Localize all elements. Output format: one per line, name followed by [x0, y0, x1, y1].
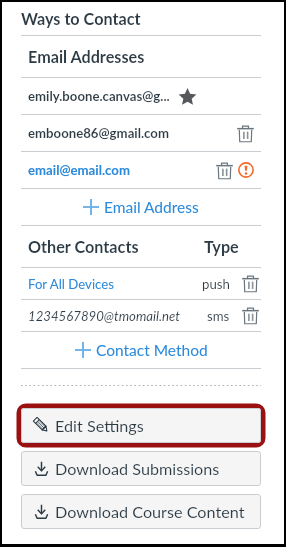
button[interactable]: For All Devices — [21, 268, 261, 299]
button[interactable]: Email Address — [21, 189, 261, 225]
button[interactable]: 1234567890@tmomail.net — [21, 300, 261, 331]
staticText: emily.boone.canvas@g... — [28, 88, 170, 104]
button[interactable]: emboone86@gmail.com — [21, 115, 261, 151]
button[interactable]: emily.boone.canvas@g... — [21, 78, 261, 114]
staticText: push — [202, 276, 230, 292]
button[interactable]: Download Course Content — [21, 494, 261, 529]
staticText: email@email.com — [28, 162, 130, 178]
staticText: Ways to Contact — [21, 9, 141, 28]
button[interactable]: Edit Settings — [21, 408, 261, 443]
staticText: emboone86@gmail.com — [28, 125, 169, 141]
staticText: sms — [207, 308, 230, 324]
staticText: Edit Settings — [55, 416, 144, 435]
button[interactable]: Delete — [216, 162, 233, 179]
staticText: Contact Method — [96, 341, 208, 360]
button[interactable]: Download Submissions — [21, 451, 261, 486]
staticText: Download Course Content — [55, 502, 245, 521]
staticText: 1234567890@tmomail.net — [28, 308, 181, 324]
staticText: Type — [204, 237, 239, 256]
button[interactable]: Delete — [242, 275, 259, 292]
button[interactable]: Delete — [242, 307, 259, 324]
button[interactable]: Default email address — [179, 88, 196, 105]
button[interactable]: email@email.com — [21, 152, 261, 188]
staticText: Other Contacts — [28, 237, 139, 256]
staticText: Email Addresses — [28, 47, 145, 66]
staticText: For All Devices — [28, 276, 114, 292]
button[interactable]: Contact Method — [21, 332, 261, 368]
button[interactable]: Unconfirmed email — [238, 162, 254, 178]
button[interactable]: Delete — [237, 125, 254, 142]
staticText: Email Address — [104, 198, 199, 217]
staticText: Download Submissions — [55, 459, 220, 478]
